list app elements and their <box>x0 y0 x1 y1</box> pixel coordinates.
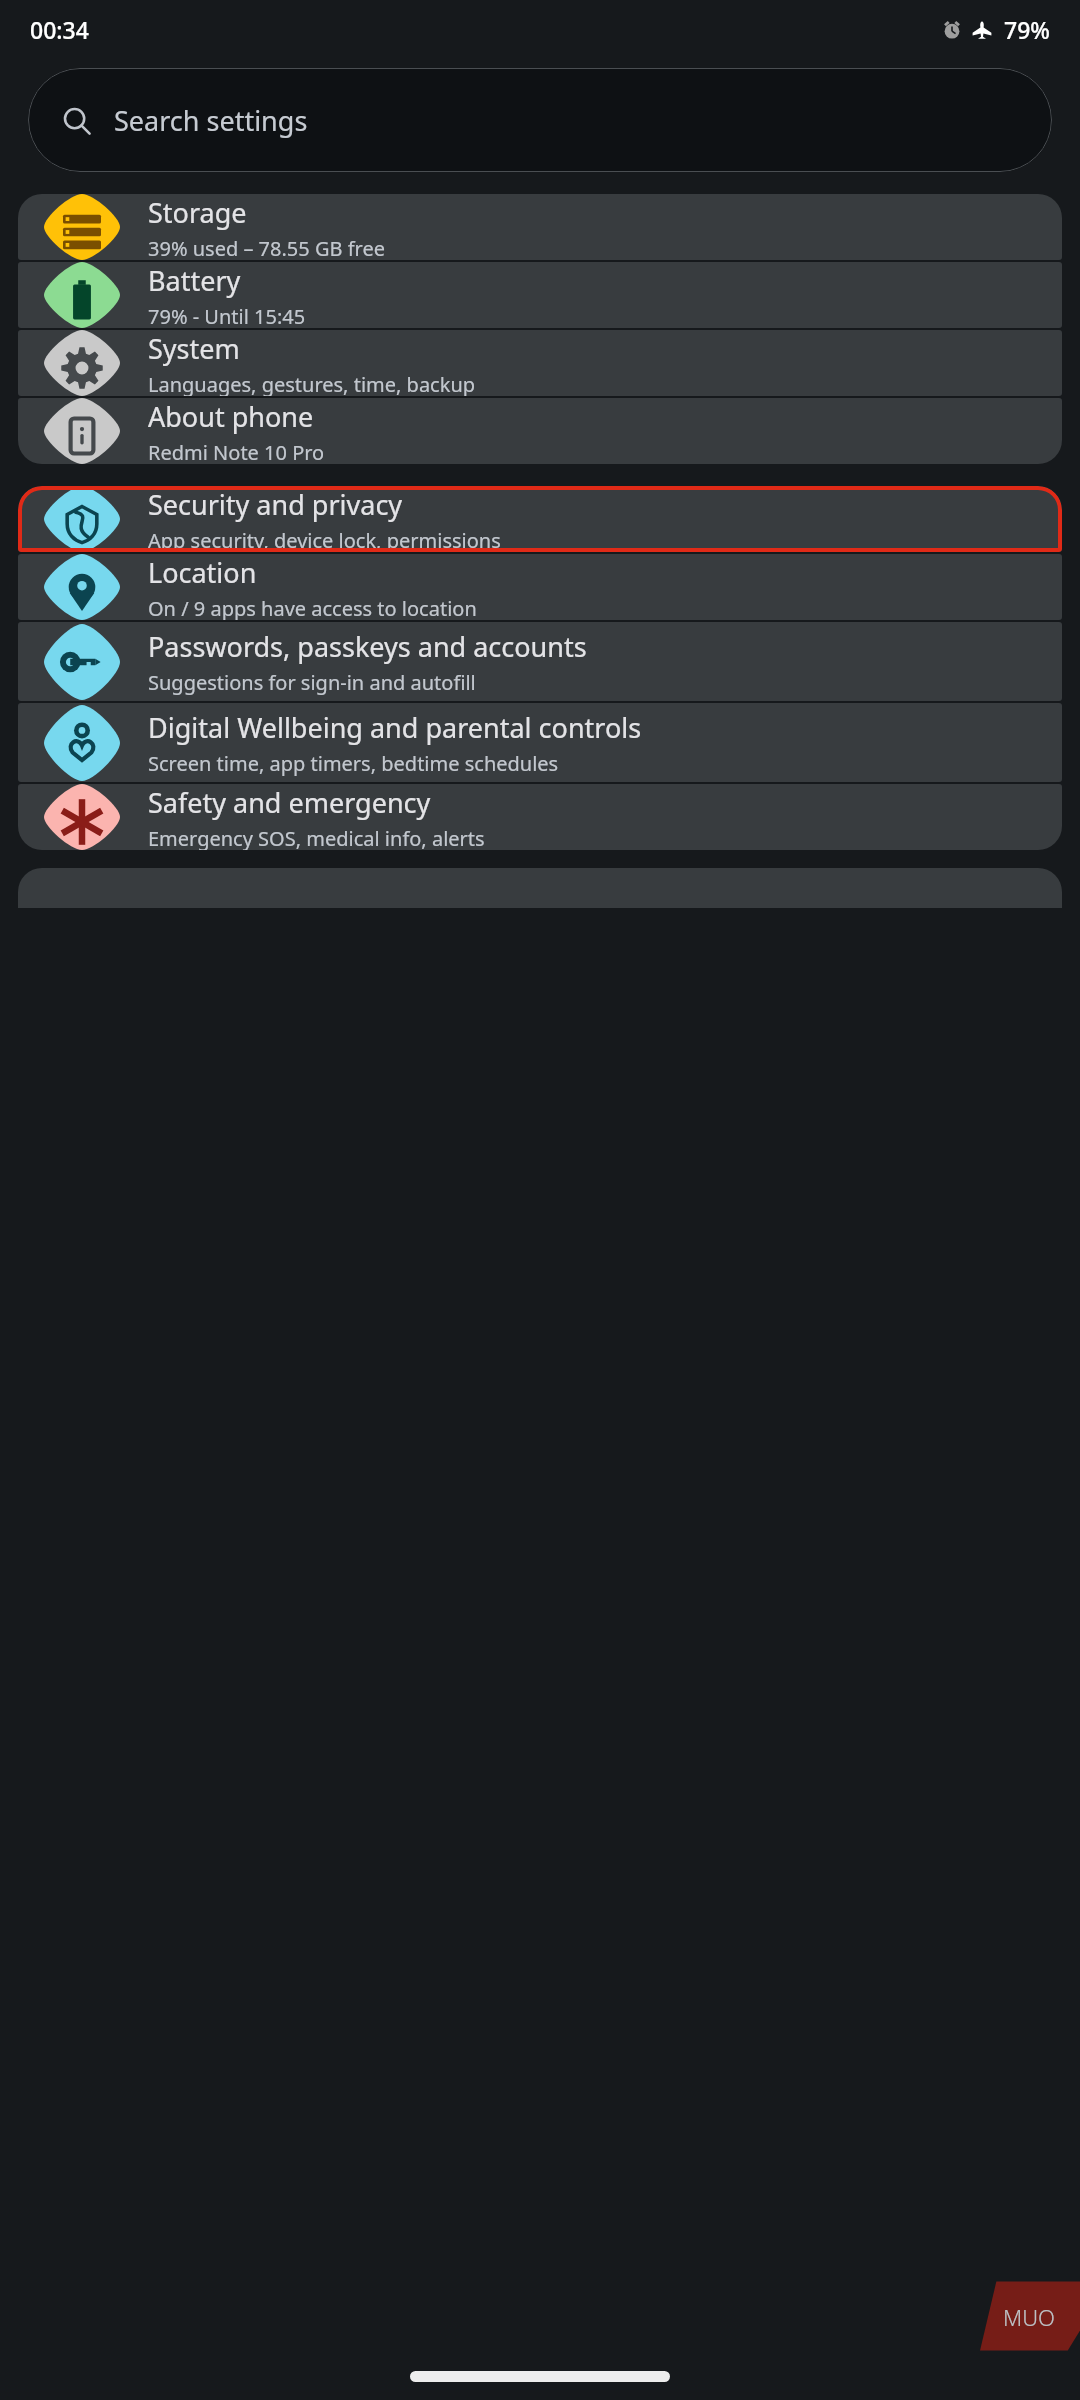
button[interactable]: Security and privacy <box>18 486 1062 552</box>
staticText: Suggestions for sign-in and autofill <box>148 669 476 696</box>
staticText: On / 9 apps have access to location <box>148 595 477 620</box>
other: Security and privacy <box>44 486 120 552</box>
other: Passwords <box>44 624 120 700</box>
staticText: Emergency SOS, medical info, alerts <box>148 825 485 850</box>
staticText: Location <box>148 554 257 591</box>
other: Location <box>44 554 120 620</box>
staticText: 79% <box>1004 14 1050 45</box>
button[interactable]: Passwords <box>18 622 1062 701</box>
button[interactable]: Safety and emergency <box>18 784 1062 850</box>
button[interactable]: About phone <box>18 398 1062 464</box>
staticText: Safety and emergency <box>148 784 431 821</box>
staticText: 39% used – 78.55 GB free <box>148 235 385 260</box>
staticText: 00:34 <box>30 14 89 45</box>
other: Safety and emergency <box>44 784 120 850</box>
button[interactable]: Search settings <box>28 68 1052 172</box>
button[interactable]: Digital Wellbeing <box>18 703 1062 782</box>
staticText: 79% - Until 15:45 <box>148 303 306 328</box>
staticText: Passwords, passkeys and accounts <box>148 628 587 665</box>
button[interactable]: System <box>18 330 1062 396</box>
staticText: System <box>148 330 240 367</box>
staticText: Redmi Note 10 Pro <box>148 439 325 464</box>
other: System <box>44 330 120 396</box>
other: Battery <box>44 262 120 328</box>
other: Storage <box>44 194 120 260</box>
button[interactable]: Battery <box>18 262 1062 328</box>
staticText: Screen time, app timers, bedtime schedul… <box>148 750 559 777</box>
staticText: Storage <box>148 194 247 231</box>
staticText: Battery <box>148 262 241 299</box>
staticText: Security and privacy <box>148 486 403 523</box>
staticText: Digital Wellbeing and parental controls <box>148 709 642 746</box>
staticText: App security, device lock, permissions <box>148 527 501 552</box>
staticText: Languages, gestures, time, backup <box>148 371 476 396</box>
staticText: MUO <box>1003 2302 1055 2332</box>
staticText: About phone <box>148 398 314 435</box>
button[interactable]: Storage <box>18 194 1062 260</box>
button[interactable]: Location <box>18 554 1062 620</box>
other: About phone <box>44 398 120 464</box>
staticText: Search settings <box>114 102 308 139</box>
other: Digital Wellbeing <box>44 705 120 781</box>
